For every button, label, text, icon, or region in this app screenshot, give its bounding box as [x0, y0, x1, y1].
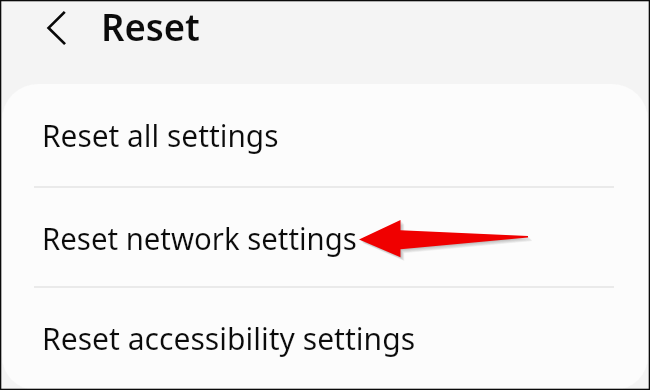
button[interactable]: Reset network settings	[2, 187, 648, 288]
staticText: Reset	[101, 0, 200, 52]
button[interactable]: Reset accessibility settings	[2, 287, 648, 390]
staticText: Reset all settings	[42, 114, 279, 156]
staticText: Reset accessibility settings	[42, 317, 415, 359]
staticText: Reset network settings	[42, 217, 357, 259]
button[interactable]: Back	[36, 7, 76, 47]
button[interactable]: Reset all settings	[2, 84, 648, 187]
